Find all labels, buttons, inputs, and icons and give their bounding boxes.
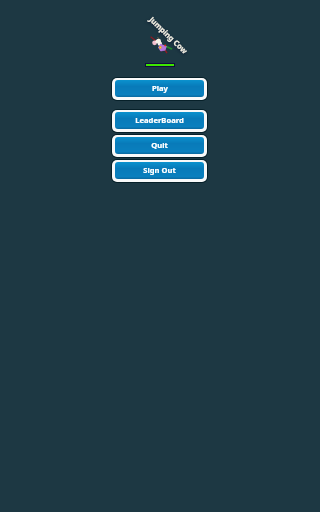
button[interactable]: Play — [111, 77, 208, 101]
button[interactable]: LeaderBoard — [111, 109, 208, 133]
staticText: Jumping Cow — [147, 14, 190, 56]
staticText: Play — [152, 83, 168, 93]
staticText: Quit — [151, 140, 168, 150]
button[interactable]: Quit — [111, 134, 208, 158]
staticText: LeaderBoard — [135, 115, 184, 125]
button[interactable]: Sign Out — [111, 159, 208, 183]
staticText: Sign Out — [143, 165, 176, 175]
